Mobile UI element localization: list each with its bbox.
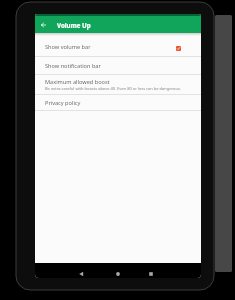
staticText: Maximum allowed boost — [45, 78, 110, 86]
staticText: Be extra careful with boosts above 40. E… — [45, 86, 181, 91]
staticText: Show notification bar — [45, 62, 101, 70]
button[interactable]: Show notification bar — [35, 57, 201, 74]
staticText: Show volume bar — [45, 43, 91, 51]
button[interactable] — [71, 266, 91, 278]
button[interactable]: Show volume bar — [35, 33, 201, 56]
button[interactable]: Privacy policy — [35, 95, 201, 110]
staticText: Volume Up — [57, 21, 91, 29]
button[interactable] — [108, 266, 128, 278]
button[interactable] — [141, 266, 161, 278]
button[interactable] — [35, 16, 52, 33]
staticText: Privacy policy — [45, 99, 81, 107]
button[interactable]: Maximum allowed boost — [35, 75, 201, 94]
